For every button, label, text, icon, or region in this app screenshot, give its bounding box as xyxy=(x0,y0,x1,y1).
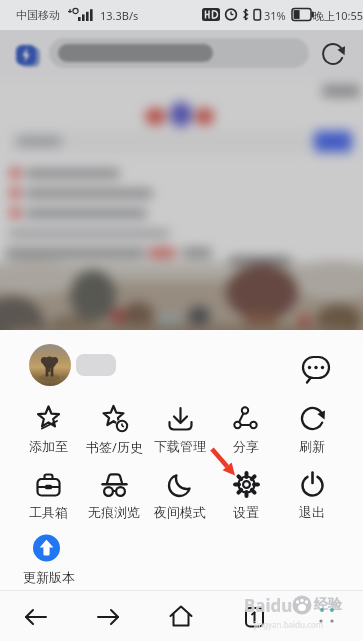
button[interactable]: 添加至 xyxy=(15,402,81,454)
staticText: 工具箱 xyxy=(29,504,68,520)
button[interactable] xyxy=(290,590,363,641)
button[interactable] xyxy=(144,590,217,641)
button[interactable]: 下载管理 xyxy=(147,402,213,454)
staticText: 更新版本 xyxy=(23,569,75,585)
button[interactable] xyxy=(72,590,144,641)
staticText: 晚上10:55 xyxy=(313,8,363,23)
staticText: 夜间模式 xyxy=(154,504,206,520)
staticText: 退出 xyxy=(299,504,325,520)
staticText: Baidu xyxy=(244,594,293,617)
staticText: 无痕浏览 xyxy=(88,504,140,520)
button[interactable] xyxy=(298,352,334,384)
staticText: 添加至 xyxy=(29,438,68,454)
button[interactable]: 设置 xyxy=(213,468,279,520)
button[interactable] xyxy=(0,590,72,641)
staticText: 分享 xyxy=(233,438,259,454)
button[interactable]: 工具箱 xyxy=(15,468,81,520)
button[interactable]: 无痕浏览 xyxy=(81,468,147,520)
staticText: 刷新 xyxy=(299,438,325,454)
staticText: 下载管理 xyxy=(154,438,206,454)
staticText: jingyan.baidu.com xyxy=(254,619,324,630)
staticText: 中国移动 xyxy=(16,8,60,22)
staticText: 设置 xyxy=(233,504,259,520)
button[interactable]: 退出 xyxy=(279,468,345,520)
button[interactable] xyxy=(217,590,290,641)
staticText: 31% xyxy=(264,8,286,23)
button[interactable]: 刷新 xyxy=(279,402,345,454)
button[interactable]: 分享 xyxy=(213,402,279,454)
button[interactable]: 夜间模式 xyxy=(147,468,213,520)
button[interactable]: 更新版本 xyxy=(16,530,86,586)
button[interactable]: 书签/历史 xyxy=(81,402,147,456)
staticText: 经验 xyxy=(314,596,342,614)
button[interactable] xyxy=(29,344,71,386)
staticText: 书签/历史 xyxy=(86,438,143,456)
staticText: 13.3B/s xyxy=(100,8,139,23)
